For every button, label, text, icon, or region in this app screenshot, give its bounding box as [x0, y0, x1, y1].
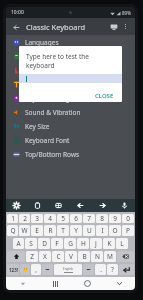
- staticText: Theme: [25, 80, 47, 89]
- button[interactable]: Shift: [7, 251, 25, 262]
- staticText: Y: [74, 226, 78, 235]
- button[interactable]: Emoji: [20, 264, 30, 275]
- staticText: 1: [11, 214, 15, 223]
- button[interactable]: Gestures: [6, 63, 135, 77]
- button[interactable]: Predictions & Corrections: [6, 49, 135, 63]
- button[interactable]: 3: [31, 214, 43, 223]
- staticText: L: [120, 239, 124, 248]
- staticText: Z: [30, 252, 34, 261]
- button[interactable]: Z: [26, 251, 38, 262]
- staticText: 3: [35, 214, 39, 223]
- button[interactable]: F: [51, 238, 63, 249]
- button[interactable]: Keyboard Font: [6, 133, 135, 147]
- button[interactable]: 7: [83, 214, 95, 223]
- button[interactable]: H: [77, 238, 89, 249]
- button[interactable]: Back: [103, 277, 135, 290]
- button[interactable]: 1: [7, 214, 18, 223]
- button[interactable]: Keyboard Height: [6, 91, 135, 105]
- staticText: Languages: [25, 38, 59, 47]
- staticText: CLOSE: [95, 92, 114, 99]
- button[interactable]: P: [122, 225, 134, 236]
- button[interactable]: A: [13, 238, 24, 249]
- button[interactable]: Key Size: [6, 119, 135, 133]
- button[interactable]: N: [91, 251, 103, 262]
- staticText: Classic Keyboard: [26, 22, 86, 32]
- button[interactable]: Move right: [91, 199, 113, 212]
- button[interactable]: 0: [122, 214, 134, 223]
- button[interactable]: K: [103, 238, 115, 249]
- button[interactable]: Layouts: [48, 199, 69, 212]
- staticText: V: [69, 252, 73, 261]
- button[interactable]: 5: [57, 214, 69, 223]
- staticText: W: [21, 226, 28, 235]
- button[interactable]: D: [38, 238, 50, 249]
- button[interactable]: Back: [10, 21, 22, 33]
- button[interactable]: Q: [7, 225, 18, 236]
- button[interactable]: J: [90, 238, 102, 249]
- button[interactable]: Clipboard: [27, 199, 48, 212]
- staticText: Predictions & Corrections: [25, 52, 103, 61]
- button[interactable]: R: [44, 225, 56, 236]
- button[interactable]: Enter: [119, 264, 134, 275]
- button[interactable]: Settings: [6, 199, 27, 212]
- button[interactable]: O: [109, 225, 121, 236]
- staticText: G: [68, 239, 73, 248]
- button[interactable]: 123!: [7, 264, 19, 275]
- button[interactable]: Home: [71, 277, 103, 290]
- button[interactable]: M: [104, 251, 116, 262]
- staticText: 10:00: [11, 9, 24, 16]
- staticText: T: [61, 226, 65, 235]
- staticText: Top/Bottom Rows: [25, 150, 80, 159]
- button[interactable]: Sound & Vibration: [6, 105, 135, 119]
- staticText: C: [56, 252, 61, 261]
- button[interactable]: 6: [70, 214, 82, 223]
- button[interactable]: Space: [54, 264, 82, 275]
- button[interactable]: V: [65, 251, 77, 262]
- button[interactable]: Move left: [69, 199, 91, 212]
- button[interactable]: Languages: [6, 35, 135, 49]
- staticText: 7: [87, 214, 91, 223]
- button[interactable]: ,: [31, 264, 41, 275]
- button[interactable]: Theme: [6, 77, 135, 91]
- staticText: .: [100, 265, 102, 274]
- button[interactable]: E: [31, 225, 43, 236]
- button[interactable]: .: [95, 264, 106, 275]
- button[interactable]: B: [78, 251, 90, 262]
- button[interactable]: Next language: [83, 264, 94, 275]
- staticText: 123!: [9, 267, 18, 273]
- button[interactable]: 9: [109, 214, 121, 223]
- button[interactable]: Keyboard dismiss: [6, 277, 39, 290]
- button[interactable]: Previous language: [42, 264, 53, 275]
- button[interactable]: T: [57, 225, 69, 236]
- staticText: N: [95, 252, 100, 261]
- button[interactable]: S: [25, 238, 37, 249]
- button[interactable]: Cast to display: [107, 20, 120, 33]
- staticText: K: [107, 239, 112, 248]
- button[interactable]: ?: [107, 264, 118, 275]
- button[interactable]: C: [52, 251, 64, 262]
- button[interactable]: G: [64, 238, 76, 249]
- staticText: 8: [100, 214, 104, 223]
- staticText: S: [29, 239, 33, 248]
- button[interactable]: Top/Bottom Rows: [6, 147, 135, 161]
- button[interactable]: W: [19, 225, 30, 236]
- staticText: M: [107, 252, 113, 261]
- staticText: ,: [35, 265, 37, 274]
- button[interactable]: 4: [44, 214, 56, 223]
- button[interactable]: CLOSE: [87, 89, 122, 102]
- button[interactable]: More options: [120, 21, 131, 32]
- button[interactable]: Voice input: [113, 199, 135, 212]
- button[interactable]: L: [116, 238, 128, 249]
- button[interactable]: I: [96, 225, 108, 236]
- button[interactable]: X: [39, 251, 51, 262]
- button[interactable]: Recents: [39, 277, 71, 290]
- staticText: Key Size: [25, 122, 50, 131]
- button[interactable]: 8: [96, 214, 108, 223]
- button[interactable]: Y: [70, 225, 82, 236]
- button[interactable]: Backspace: [117, 251, 134, 262]
- button[interactable]: 2: [19, 214, 30, 223]
- staticText: Type here to test the keyboard: [26, 52, 115, 70]
- button[interactable]: U: [83, 225, 95, 236]
- staticText: P: [126, 226, 130, 235]
- staticText: H: [81, 239, 86, 248]
